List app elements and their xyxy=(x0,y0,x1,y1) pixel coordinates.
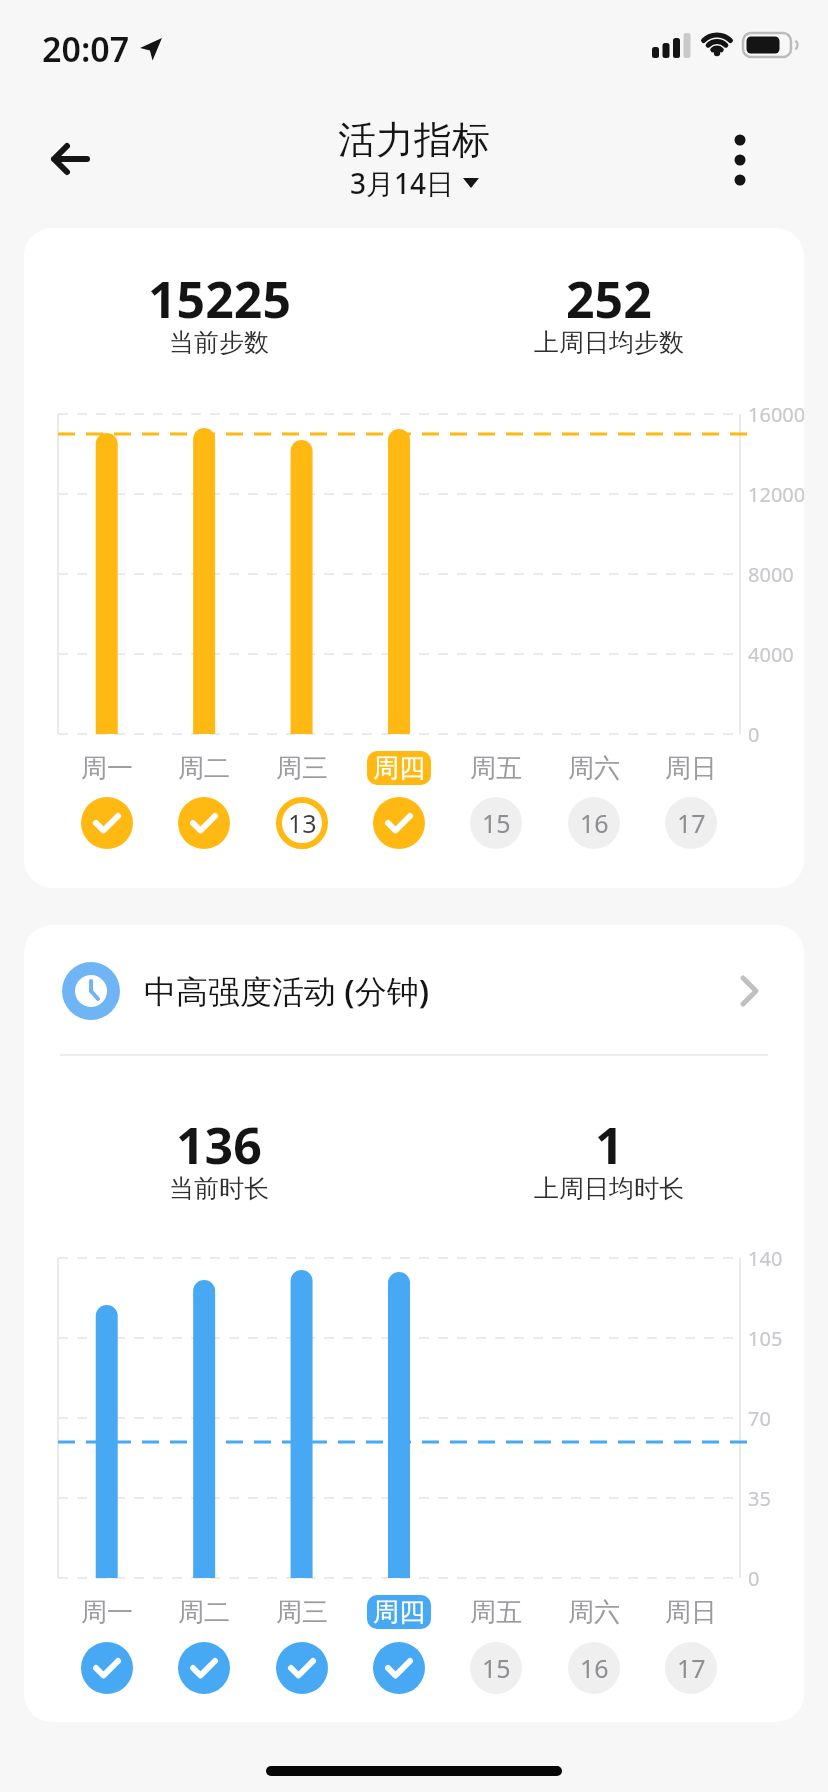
staticText: 周一 xyxy=(81,752,133,785)
staticText: 活力指标 xyxy=(338,116,490,164)
staticText: 17 xyxy=(677,1651,706,1685)
button[interactable]: 15 xyxy=(470,797,522,849)
staticText: 16 xyxy=(580,806,609,840)
button[interactable] xyxy=(276,1642,328,1694)
staticText: 周四 xyxy=(373,752,425,785)
button[interactable] xyxy=(712,134,768,186)
staticText: 136 xyxy=(176,1111,262,1179)
staticText: 3月14日 xyxy=(350,164,455,202)
staticText: 252 xyxy=(566,265,652,333)
staticText: 16000 xyxy=(748,401,804,428)
button[interactable]: 周日 xyxy=(651,750,731,786)
staticText: 15225 xyxy=(148,265,291,333)
staticText: 13 xyxy=(288,806,317,840)
button[interactable]: 周四 xyxy=(367,751,431,785)
button[interactable] xyxy=(40,135,100,183)
button[interactable]: 周五 xyxy=(456,750,536,786)
staticText: 当前步数 xyxy=(169,327,269,358)
staticText: 周一 xyxy=(81,1596,133,1629)
staticText: 当前时长 xyxy=(169,1173,269,1204)
staticText: 4000 xyxy=(748,641,794,668)
staticText: 周四 xyxy=(373,1596,425,1629)
staticText: 中高强度活动 (分钟) xyxy=(144,969,430,1013)
button[interactable]: 17 xyxy=(665,1642,717,1694)
staticText: 周六 xyxy=(568,1596,620,1629)
staticText: 上周日均时长 xyxy=(534,1173,684,1204)
staticText: 16 xyxy=(580,1651,609,1685)
staticText: 周五 xyxy=(470,752,522,785)
staticText: 17 xyxy=(677,806,706,840)
staticText: 20:07 xyxy=(42,26,130,72)
staticText: 周三 xyxy=(276,1596,328,1629)
button[interactable]: 17 xyxy=(665,797,717,849)
button[interactable]: 13 xyxy=(276,797,328,849)
button[interactable] xyxy=(178,797,230,849)
button[interactable]: 3月14日 xyxy=(350,164,479,202)
staticText: 140 xyxy=(748,1245,783,1272)
staticText: 1 xyxy=(595,1111,624,1179)
button[interactable]: 周二 xyxy=(164,750,244,786)
staticText: 周三 xyxy=(276,752,328,785)
staticText: 周五 xyxy=(470,1596,522,1629)
staticText: 0 xyxy=(748,1565,760,1592)
staticText: 70 xyxy=(748,1405,771,1432)
button[interactable] xyxy=(81,1642,133,1694)
staticText: 周六 xyxy=(568,752,620,785)
staticText: 15 xyxy=(482,1651,511,1685)
button[interactable]: 周日 xyxy=(651,1594,731,1630)
button[interactable]: 15 xyxy=(470,1642,522,1694)
button[interactable]: 周一 xyxy=(67,1594,147,1630)
staticText: 上周日均步数 xyxy=(534,327,684,358)
button[interactable]: 周四 xyxy=(367,1595,431,1629)
staticText: 周二 xyxy=(178,752,230,785)
staticText: 8000 xyxy=(748,561,794,588)
staticText: 105 xyxy=(748,1325,783,1352)
button[interactable] xyxy=(373,1642,425,1694)
button[interactable]: 周二 xyxy=(164,1594,244,1630)
button[interactable]: 周六 xyxy=(554,750,634,786)
button[interactable]: 周六 xyxy=(554,1594,634,1630)
button[interactable] xyxy=(81,797,133,849)
button[interactable]: 周三 xyxy=(262,1594,342,1630)
button[interactable] xyxy=(373,797,425,849)
staticText: 15 xyxy=(482,806,511,840)
staticText: 12000 xyxy=(748,481,804,508)
button[interactable]: 16 xyxy=(568,1642,620,1694)
button[interactable] xyxy=(178,1642,230,1694)
staticText: 35 xyxy=(748,1485,771,1512)
button[interactable]: 16 xyxy=(568,797,620,849)
staticText: 0 xyxy=(748,721,760,748)
staticText: 周日 xyxy=(665,752,717,785)
button[interactable] xyxy=(62,962,120,1020)
button[interactable]: 周一 xyxy=(67,750,147,786)
button[interactable]: 周五 xyxy=(456,1594,536,1630)
staticText: 周日 xyxy=(665,1596,717,1629)
button[interactable]: 周三 xyxy=(262,750,342,786)
staticText: 周二 xyxy=(178,1596,230,1629)
